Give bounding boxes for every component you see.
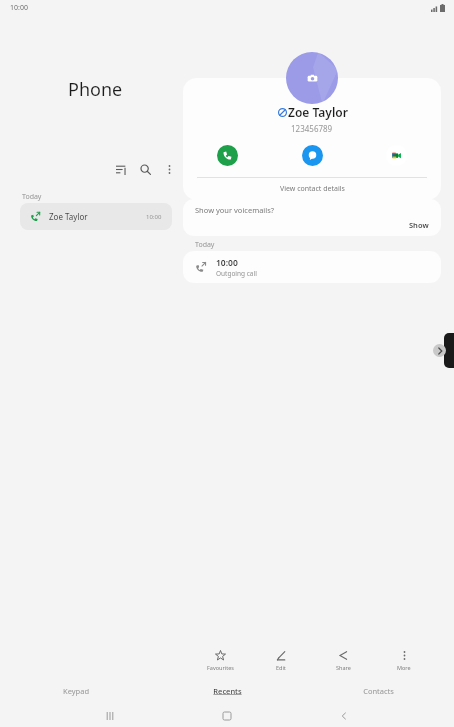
button[interactable]: Contacts (303, 682, 454, 700)
staticText: Today (22, 192, 42, 202)
button[interactable]: More options (160, 160, 178, 178)
staticText: Recents (213, 686, 242, 696)
button[interactable]: Share (319, 648, 367, 673)
button[interactable]: More (380, 648, 428, 673)
staticText: 123456789 (291, 123, 333, 134)
staticText: Zoe Taylor (49, 211, 88, 222)
button[interactable]: 10:00 (183, 251, 441, 283)
button[interactable]: Call (217, 145, 238, 166)
staticText: Phone (68, 77, 123, 102)
staticText: Zoe Taylor (288, 104, 348, 120)
staticText: Show (409, 220, 429, 230)
button[interactable]: Back (337, 709, 351, 723)
button[interactable]: Keypad (0, 682, 152, 700)
staticText: Contacts (363, 686, 394, 696)
button[interactable]: Sort (112, 160, 130, 178)
button[interactable]: Video call (386, 145, 407, 166)
button[interactable]: Show your voicemails? (183, 199, 441, 236)
staticText: Outgoing call (216, 269, 257, 278)
button[interactable]: Search (136, 160, 154, 178)
button[interactable]: Favourites (196, 648, 244, 673)
staticText: Favourites (207, 664, 234, 671)
button[interactable]: Open panel (444, 333, 454, 368)
button[interactable]: Recent apps (103, 709, 117, 723)
button[interactable]: Recents (152, 682, 303, 700)
button[interactable]: Home (220, 709, 234, 723)
staticText: Share (336, 664, 351, 671)
staticText: Keypad (63, 686, 89, 696)
staticText: 10:00 (146, 213, 162, 221)
staticText: 10:00 (216, 257, 238, 269)
staticText: Today (195, 240, 215, 250)
staticText: Edit (276, 664, 286, 671)
button[interactable]: Message (302, 145, 323, 166)
staticText: Show your voicemails? (195, 205, 275, 215)
staticText: 10:00 (10, 3, 28, 13)
button[interactable]: Zoe Taylor (20, 203, 172, 230)
button[interactable]: Edit (257, 648, 305, 673)
staticText: More (397, 664, 411, 671)
staticText: View contact details (280, 184, 345, 194)
button[interactable]: View contact details (183, 178, 441, 200)
